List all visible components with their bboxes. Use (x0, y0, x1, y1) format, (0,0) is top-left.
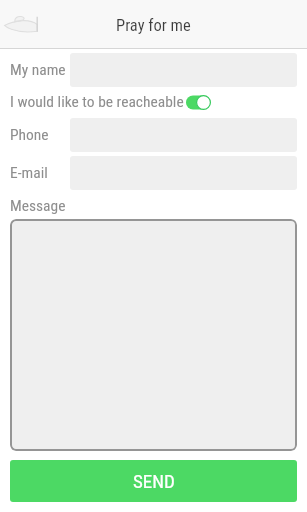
staticText: Phone (10, 126, 49, 144)
staticText: SEND (133, 470, 175, 492)
staticText: Message (10, 197, 66, 215)
staticText: E-mail (10, 164, 48, 182)
staticText: My name (10, 61, 66, 79)
button[interactable] (10, 219, 297, 451)
staticText: Pray for me (116, 16, 191, 35)
button[interactable]: App logo (0, 1, 46, 47)
button[interactable]: SEND (10, 460, 297, 502)
button[interactable]: I would like to be reacheable (0, 88, 307, 116)
staticText: I would like to be reacheable (10, 93, 184, 111)
button[interactable] (186, 95, 211, 110)
